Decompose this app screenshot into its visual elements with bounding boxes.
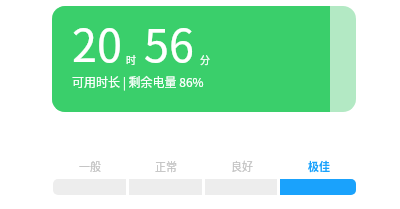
staticText: 时	[126, 52, 136, 66]
button[interactable]: 20	[52, 6, 356, 112]
button[interactable]: 一般	[53, 155, 129, 195]
button[interactable]: 极佳	[281, 155, 357, 195]
staticText: 分	[200, 52, 210, 66]
staticText: 正常	[155, 158, 177, 174]
staticText: 56	[144, 10, 194, 75]
staticText: 良好	[231, 158, 253, 174]
staticText: 一般	[79, 158, 101, 174]
staticText: 极佳	[308, 158, 330, 174]
button[interactable]: 正常	[129, 155, 205, 195]
staticText: 20	[72, 10, 122, 75]
button[interactable]: 良好	[205, 155, 281, 195]
staticText: 可用时长 | 剩余电量 86%	[72, 73, 204, 90]
